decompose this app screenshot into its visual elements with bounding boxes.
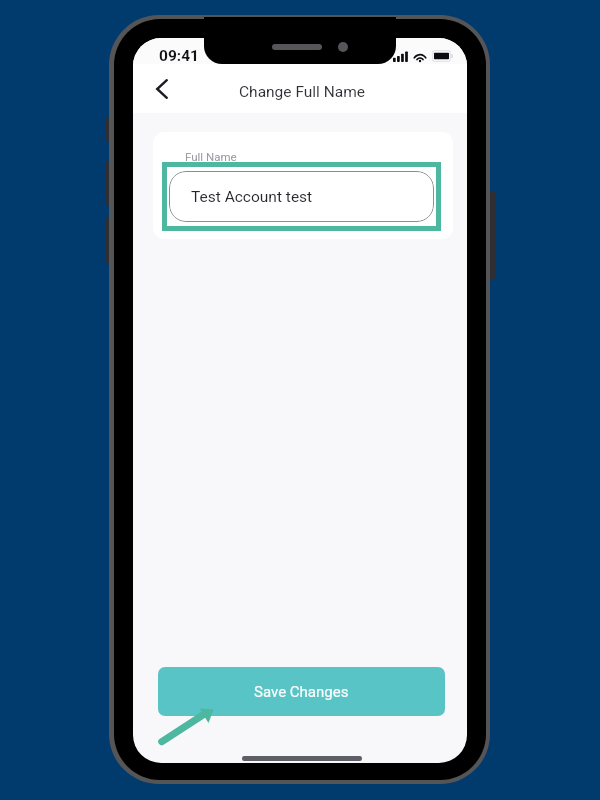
button[interactable]: Back — [146, 73, 178, 105]
button[interactable]: Save Changes — [158, 667, 445, 716]
staticText: Save Changes — [254, 683, 349, 701]
staticText: Full Name — [185, 150, 237, 163]
staticText: 09:41 — [159, 47, 199, 65]
staticText: Change Full Name — [239, 83, 366, 101]
button[interactable]: Test Account test — [169, 171, 434, 222]
staticText: Test Account test — [191, 188, 313, 206]
